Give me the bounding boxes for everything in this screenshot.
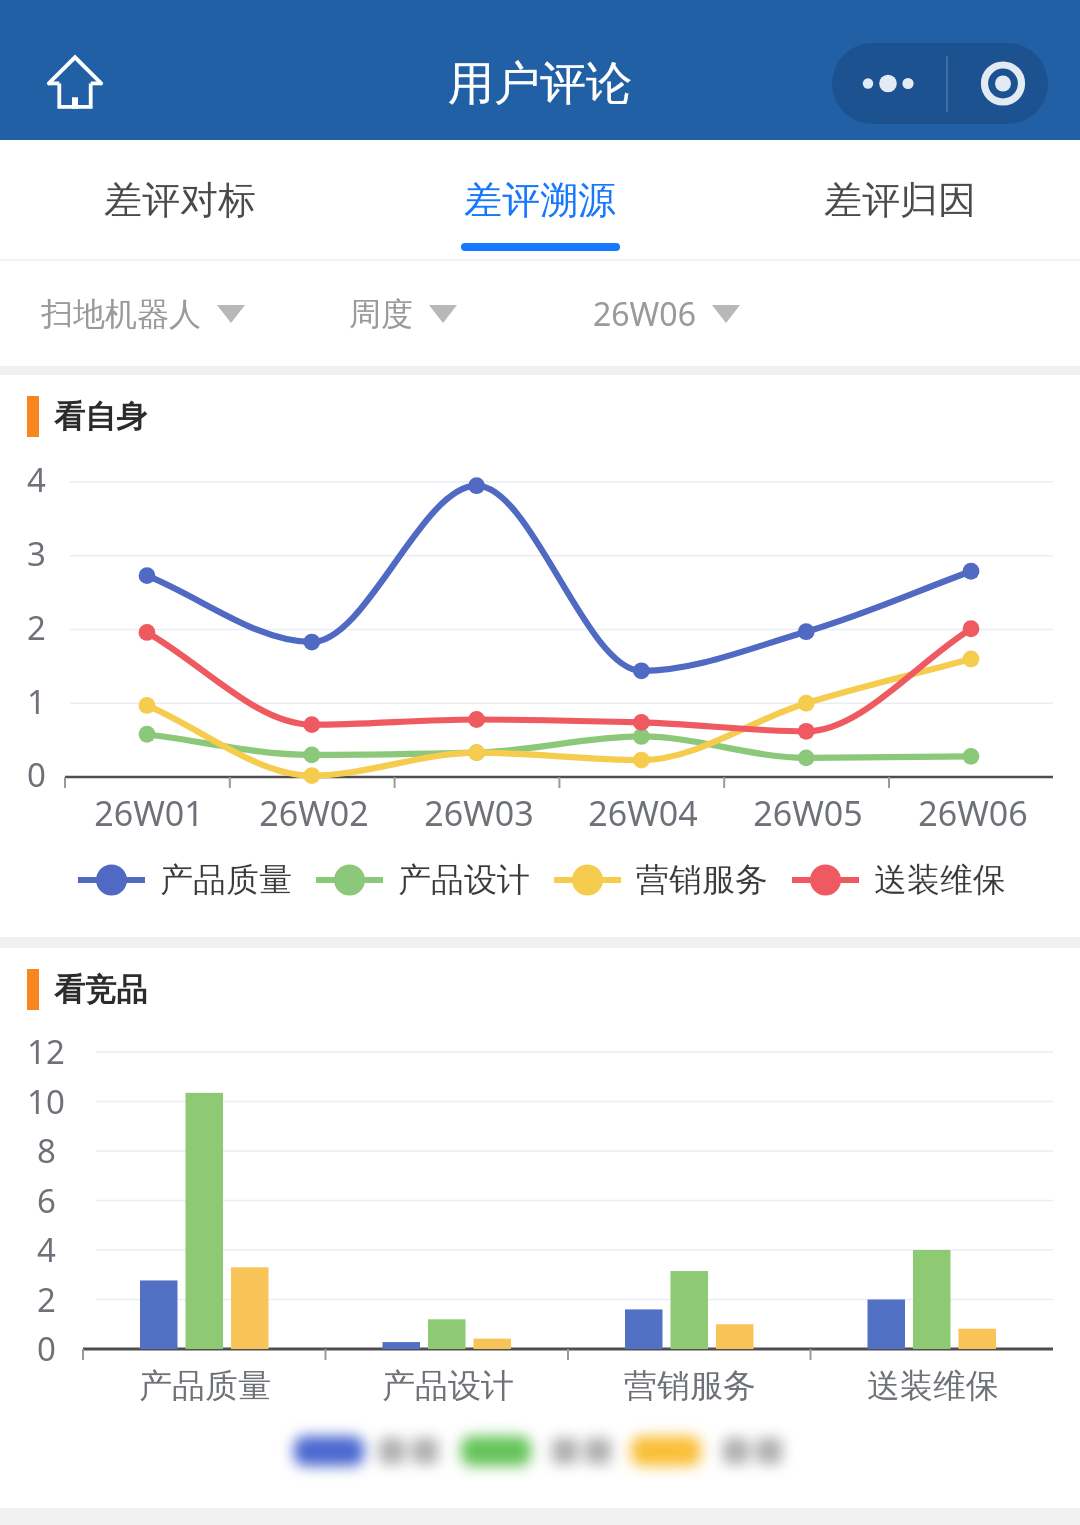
staticText: 看自身 <box>54 397 147 436</box>
button[interactable]: 产品设计 <box>316 849 530 911</box>
button[interactable]: 扫地机器人 <box>41 261 245 366</box>
button[interactable]: 差评对标 <box>0 140 360 261</box>
staticText: 26W02 <box>259 790 369 836</box>
staticText: 送装维保 <box>867 1365 999 1407</box>
staticText: 扫地机器人 <box>41 294 201 334</box>
staticText: 产品质量 <box>139 1365 271 1407</box>
staticText: 2 <box>27 605 46 650</box>
staticText: 1 <box>27 679 46 724</box>
button[interactable]: 差评溯源 <box>360 140 720 261</box>
staticText: 营销服务 <box>636 859 768 901</box>
button[interactable]: 营销服务 <box>554 849 768 911</box>
staticText: 0 <box>27 752 46 797</box>
staticText: 产品质量 <box>160 859 292 901</box>
staticText: 看竞品 <box>54 970 147 1009</box>
staticText: 营销服务 <box>624 1365 756 1407</box>
button[interactable]: 送装维保 <box>792 849 1006 911</box>
staticText: 26W05 <box>753 790 863 836</box>
staticText: 26W06 <box>593 292 696 336</box>
staticText: 产品设计 <box>398 859 530 901</box>
staticText: 26W04 <box>588 790 698 836</box>
staticText: 10 <box>27 1079 65 1124</box>
staticText: 4 <box>37 1227 56 1272</box>
staticText: 8 <box>37 1128 56 1173</box>
staticText: 用户评论 <box>448 55 632 113</box>
staticText: 3 <box>27 531 46 576</box>
staticText: 差评溯源 <box>464 176 616 224</box>
staticText: 差评归因 <box>824 176 976 224</box>
staticText: 26W06 <box>918 790 1028 836</box>
button[interactable]: 差评归因 <box>720 140 1080 261</box>
staticText: 4 <box>27 457 46 502</box>
button[interactable]: 周度 <box>349 261 457 366</box>
button[interactable]: 产品质量 <box>78 849 292 911</box>
button[interactable]: 26W06 <box>593 261 740 366</box>
staticText: 差评对标 <box>104 176 256 224</box>
button[interactable]: Home <box>35 47 115 113</box>
staticText: 产品设计 <box>382 1365 514 1407</box>
button[interactable]: More options <box>832 43 946 124</box>
staticText: 0 <box>37 1326 56 1371</box>
button[interactable]: Close mini program <box>948 43 1048 124</box>
staticText: 送装维保 <box>874 859 1006 901</box>
staticText: 12 <box>27 1029 65 1074</box>
staticText: 2 <box>37 1277 56 1322</box>
staticText: 26W01 <box>94 790 204 836</box>
staticText: 6 <box>37 1178 56 1223</box>
staticText: 周度 <box>349 294 413 334</box>
staticText: 26W03 <box>424 790 534 836</box>
